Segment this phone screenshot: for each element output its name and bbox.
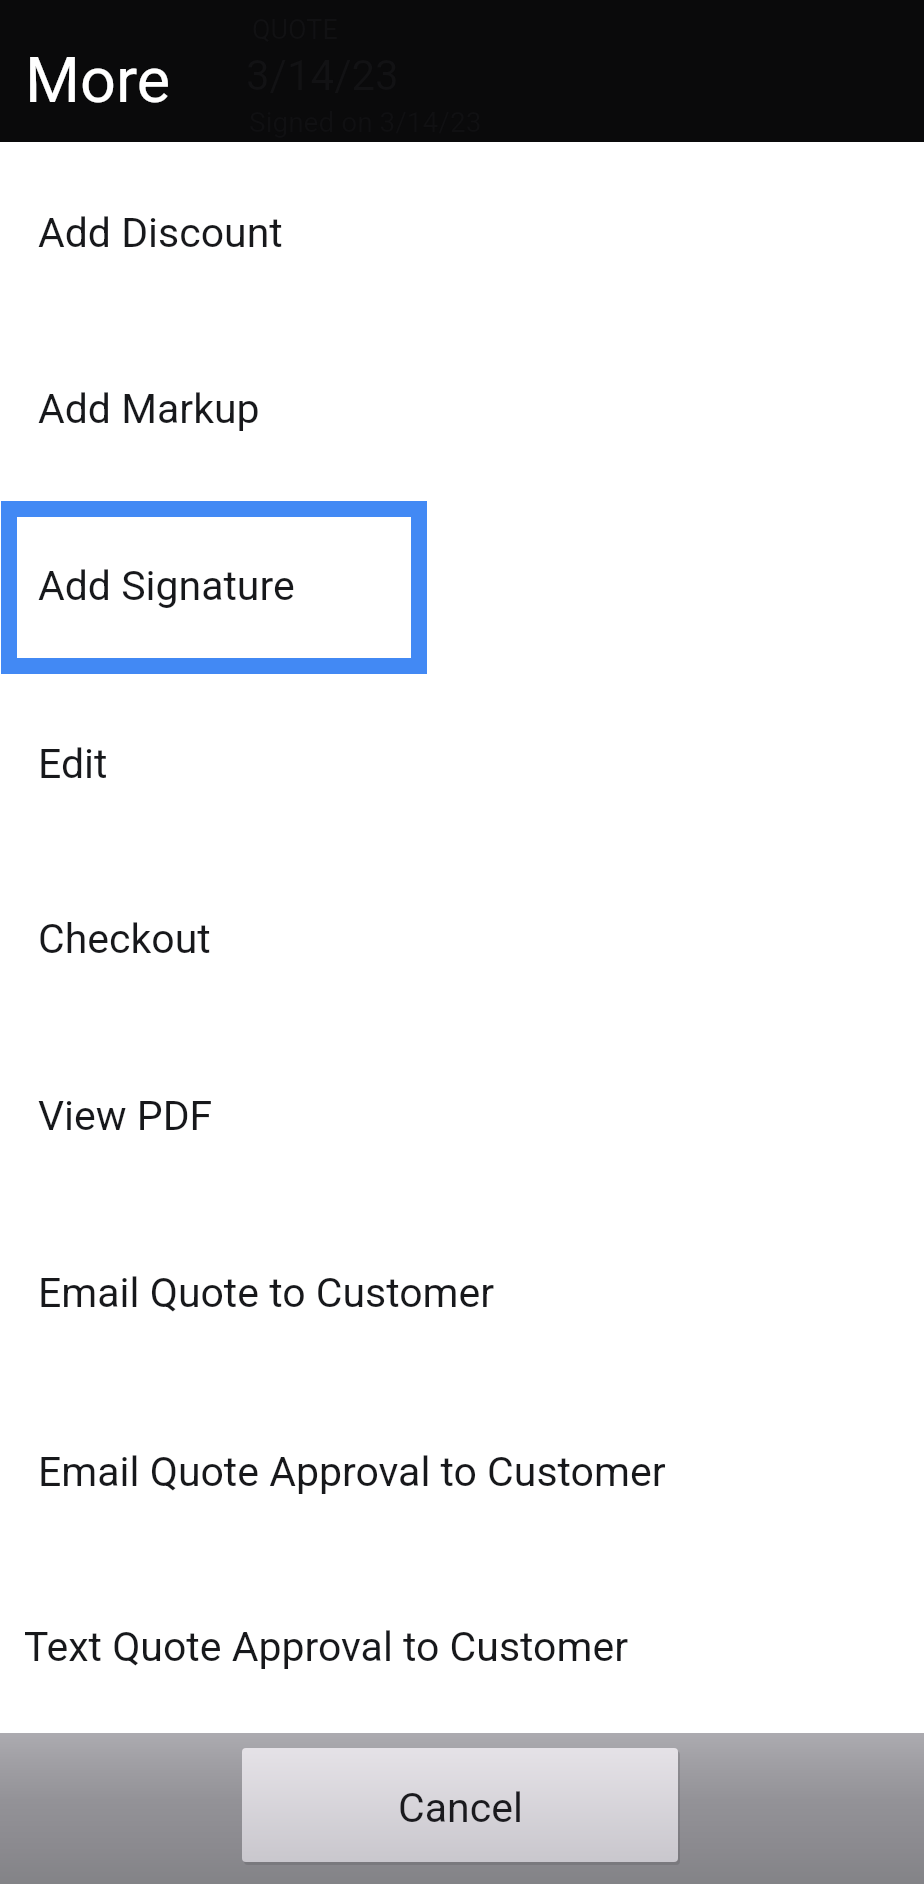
button[interactable]: Checkout — [0, 851, 924, 1027]
staticText: View PDF — [38, 1092, 213, 1140]
staticText: More — [25, 44, 171, 118]
button[interactable]: Add Signature — [0, 498, 924, 674]
staticText: Add Signature — [38, 562, 295, 610]
staticText: Edit — [38, 740, 108, 788]
button[interactable]: Edit — [0, 676, 924, 852]
staticText: Email Quote to Customer — [38, 1269, 495, 1317]
button[interactable]: Cancel — [242, 1748, 678, 1862]
button[interactable]: Email Quote Approval to Customer — [0, 1384, 924, 1560]
staticText: Add Markup — [38, 385, 260, 433]
staticText: 3/14/23 — [246, 51, 399, 100]
staticText: Cancel — [398, 1784, 523, 1832]
staticText: Email Quote Approval to Customer — [38, 1448, 666, 1496]
button[interactable]: Add Markup — [0, 321, 924, 497]
button[interactable]: View PDF — [0, 1028, 924, 1204]
button[interactable]: Add Discount — [0, 145, 924, 321]
staticText: Checkout — [38, 915, 211, 963]
staticText: Text Quote Approval to Customer — [24, 1623, 629, 1671]
staticText: Add Discount — [38, 209, 283, 257]
button[interactable]: Text Quote Approval to Customer — [0, 1559, 924, 1735]
button[interactable]: Email Quote to Customer — [0, 1205, 924, 1381]
